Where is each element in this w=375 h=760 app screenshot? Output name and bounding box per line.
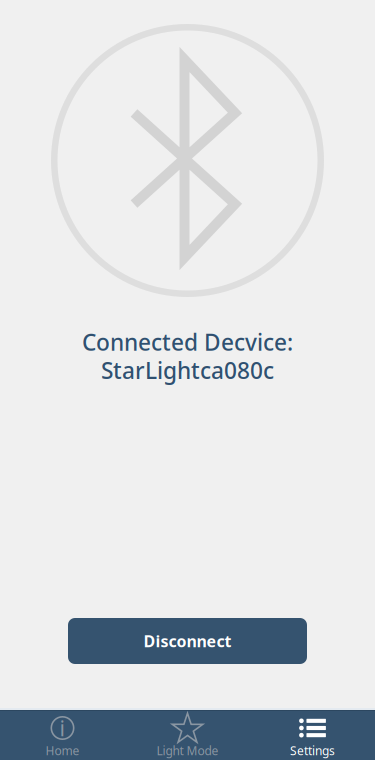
- button[interactable]: i: [0, 710, 125, 760]
- staticText: Disconnect: [143, 630, 231, 652]
- staticText: Connected Decvice:: [82, 327, 293, 357]
- staticText: i: [59, 714, 65, 742]
- button[interactable]: Disconnect: [68, 618, 307, 664]
- staticText: Light Mode: [156, 742, 218, 758]
- staticText: StarLightca080c: [101, 355, 274, 385]
- staticText: Home: [45, 742, 79, 758]
- staticText: Settings: [290, 742, 335, 758]
- button[interactable]: Light Mode: [125, 710, 250, 760]
- button[interactable]: Settings: [250, 710, 375, 760]
